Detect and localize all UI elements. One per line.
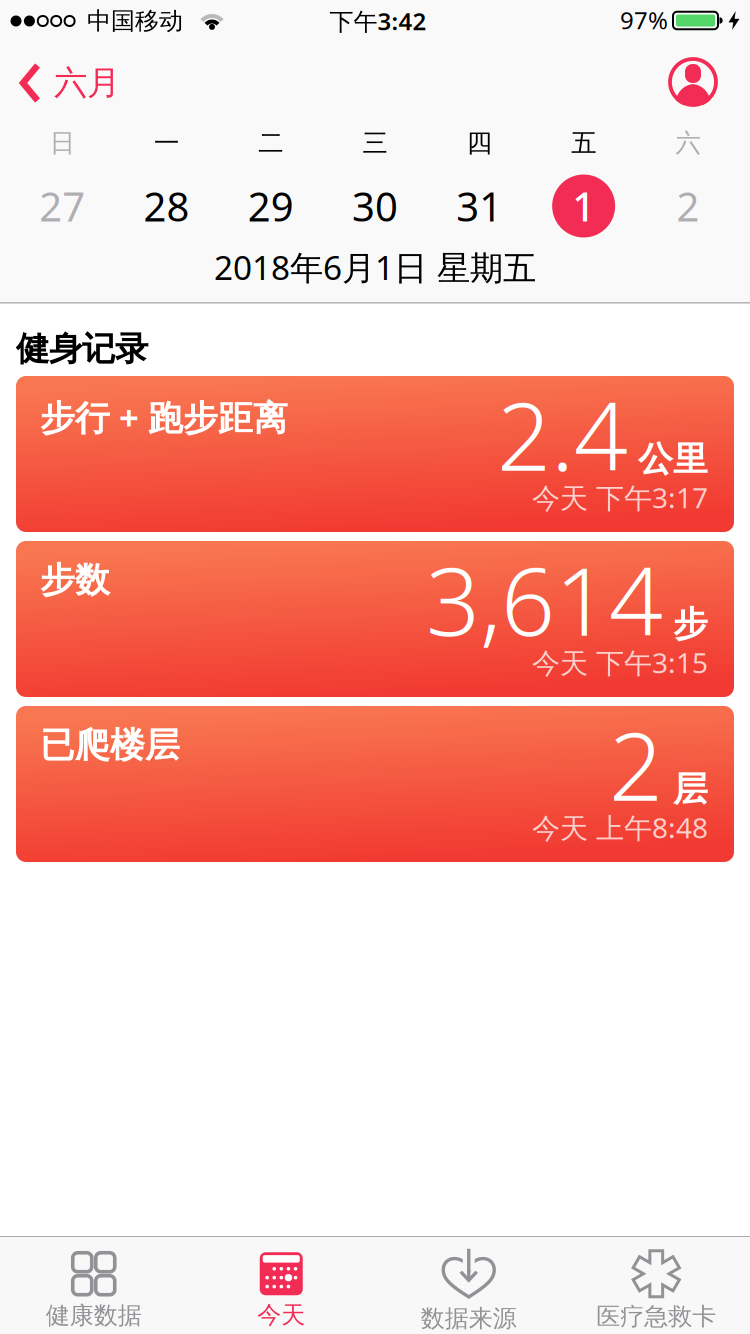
button[interactable]: 1 — [532, 171, 636, 241]
staticText: 2018年6月1日 星期五 — [214, 245, 536, 289]
staticText: 28 — [143, 179, 189, 232]
button[interactable] — [668, 57, 718, 107]
button[interactable]: 27 — [10, 171, 114, 241]
staticText: 数据来源 — [421, 1304, 517, 1333]
staticText: 3,614 — [426, 536, 663, 662]
staticText: 二 — [258, 127, 283, 158]
button[interactable]: 医疗急救卡 — [562, 1236, 750, 1334]
staticText: 中国移动 — [87, 6, 183, 36]
staticText: 今天 下午3:17 — [532, 479, 708, 516]
staticText: 步数 — [40, 559, 110, 602]
staticText: 公里 — [638, 438, 708, 480]
staticText: 下午3:42 — [329, 5, 426, 37]
staticText: 今天 — [257, 1300, 305, 1330]
staticText: 一 — [154, 127, 179, 158]
staticText: 已爬楼层 — [40, 724, 180, 767]
button[interactable]: 30 — [323, 171, 427, 241]
staticText: 今天 下午3:15 — [532, 644, 708, 681]
button[interactable]: 2 — [636, 171, 740, 241]
staticText: 日 — [50, 127, 75, 158]
button[interactable]: 步行 + 跑步距离 — [16, 376, 734, 532]
staticText: 2 — [609, 701, 663, 827]
button[interactable]: 健康数据 — [0, 1236, 187, 1334]
staticText: 层 — [673, 768, 708, 810]
button[interactable]: 数据来源 — [375, 1236, 562, 1334]
staticText: 医疗急救卡 — [596, 1302, 716, 1331]
button[interactable]: 步数 — [16, 541, 734, 697]
button[interactable]: 31 — [427, 171, 531, 241]
staticText: 六 — [675, 127, 700, 158]
staticText: 六月 — [54, 62, 120, 103]
staticText: 29 — [248, 179, 294, 232]
staticText: 步 — [673, 603, 708, 645]
button[interactable]: 29 — [219, 171, 323, 241]
staticText: 步行 + 跑步距离 — [40, 394, 288, 440]
staticText: 2 — [676, 179, 699, 232]
staticText: 27 — [39, 179, 85, 232]
staticText: 31 — [456, 179, 502, 232]
staticText: 五 — [571, 127, 596, 158]
button[interactable]: 已爬楼层 — [16, 706, 734, 862]
staticText: 健身记录 — [16, 328, 148, 369]
staticText: 健康数据 — [46, 1301, 142, 1330]
staticText: 2.4 — [497, 371, 628, 497]
staticText: 97% — [620, 4, 668, 36]
button[interactable]: 28 — [114, 171, 218, 241]
staticText: 三 — [363, 127, 388, 158]
button[interactable]: 六月 — [20, 62, 120, 103]
staticText: 30 — [352, 179, 398, 232]
staticText: 1 — [572, 179, 595, 232]
button[interactable]: 今天 — [187, 1236, 375, 1334]
staticText: 四 — [467, 127, 492, 158]
staticText: 今天 上午8:48 — [532, 809, 708, 846]
